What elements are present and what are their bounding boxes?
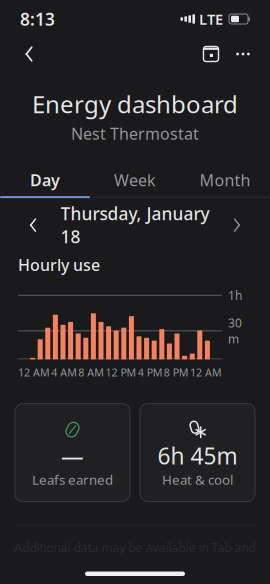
button[interactable]: Back xyxy=(12,37,46,71)
staticText: 8 PM xyxy=(164,365,189,380)
button[interactable]: Week xyxy=(90,164,180,198)
button[interactable]: — xyxy=(15,403,130,501)
staticText: 1h xyxy=(228,287,242,303)
button[interactable]: Day xyxy=(0,164,90,198)
staticText: 8:13 xyxy=(20,7,55,30)
staticText: 12 PM xyxy=(105,365,136,380)
button[interactable]: Calendar xyxy=(194,37,228,71)
staticText: Thursday, January 18 xyxy=(60,202,209,248)
staticText: Month xyxy=(199,169,250,191)
staticText: 4 PM xyxy=(138,365,163,380)
staticText: Heat & cool xyxy=(162,471,233,488)
staticText: Energy dashboard xyxy=(32,88,238,120)
staticText: — xyxy=(61,441,84,471)
button[interactable]: More options xyxy=(228,37,258,71)
staticText: Leafs earned xyxy=(32,471,113,488)
staticText: 8 AM xyxy=(78,365,104,380)
staticText: 12 AM xyxy=(190,365,222,380)
staticText: Day xyxy=(30,169,60,191)
button[interactable]: 6h 45m xyxy=(140,403,255,501)
staticText: 30m xyxy=(228,315,242,347)
staticText: LTE xyxy=(199,9,223,29)
button[interactable]: Next day xyxy=(220,210,254,240)
staticText: 12 AM xyxy=(18,365,50,380)
button[interactable]: Month xyxy=(180,164,270,198)
staticText: 4 AM xyxy=(51,365,77,380)
staticText: 6h 45m xyxy=(157,441,237,471)
staticText: Nest Thermostat xyxy=(71,123,199,144)
button[interactable]: Previous day xyxy=(16,210,50,240)
staticText: Hourly use xyxy=(18,254,100,275)
staticText: Additional data may be available in Tab … xyxy=(14,540,255,555)
staticText: Week xyxy=(114,169,156,191)
